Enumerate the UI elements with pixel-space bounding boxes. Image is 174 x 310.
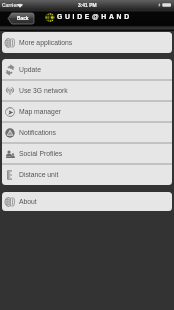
- button[interactable]: Distance unit: [2, 164, 172, 185]
- button[interactable]: Notifications: [2, 122, 172, 143]
- button[interactable]: Map manager: [2, 101, 172, 122]
- staticText: Social Profiles: [19, 150, 63, 158]
- staticText: Map manager: [19, 108, 61, 116]
- staticText: Carrier: [2, 3, 19, 8]
- staticText: Back: [17, 16, 29, 21]
- button[interactable]: About: [2, 192, 172, 211]
- staticText: More applications: [19, 39, 73, 47]
- button[interactable]: Back: [8, 13, 34, 24]
- staticText: 3:41 PM: [78, 3, 97, 8]
- staticText: Notifications: [19, 129, 57, 137]
- staticText: About: [19, 198, 37, 206]
- staticText: Update: [19, 66, 41, 74]
- button[interactable]: Update: [2, 59, 172, 80]
- button[interactable]: Use 3G network: [2, 80, 172, 101]
- staticText: GUIDE@HAND: [57, 13, 132, 21]
- staticText: Distance unit: [19, 171, 59, 179]
- button[interactable]: Social Profiles: [2, 143, 172, 164]
- button[interactable]: More applications: [2, 32, 172, 53]
- staticText: Use 3G network: [19, 87, 68, 95]
